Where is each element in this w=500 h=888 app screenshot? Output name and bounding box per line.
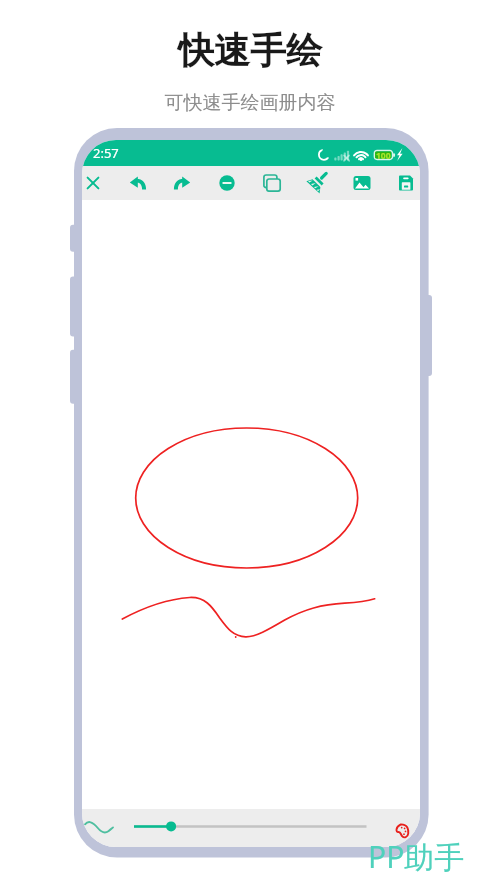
staticText: PP助手	[368, 836, 465, 877]
button[interactable]: Brush size	[128, 812, 373, 841]
button[interactable]: Close	[82, 166, 110, 200]
button[interactable]: Save	[389, 166, 420, 200]
button[interactable]: Color palette	[390, 819, 414, 843]
button[interactable]: Redo	[165, 166, 199, 200]
button[interactable]: Remove	[210, 166, 244, 200]
button[interactable]: Duplicate	[255, 166, 289, 200]
button[interactable]: Insert image	[345, 166, 379, 200]
button[interactable]: Stroke style	[84, 811, 114, 841]
staticText: 2:57	[93, 144, 119, 162]
staticText: 可快速手绘画册内容	[0, 91, 500, 115]
button[interactable]: Clear	[300, 166, 334, 200]
staticText: 快速手绘	[0, 28, 500, 73]
staticText: 100	[376, 150, 391, 160]
button[interactable]: Undo	[121, 166, 155, 200]
